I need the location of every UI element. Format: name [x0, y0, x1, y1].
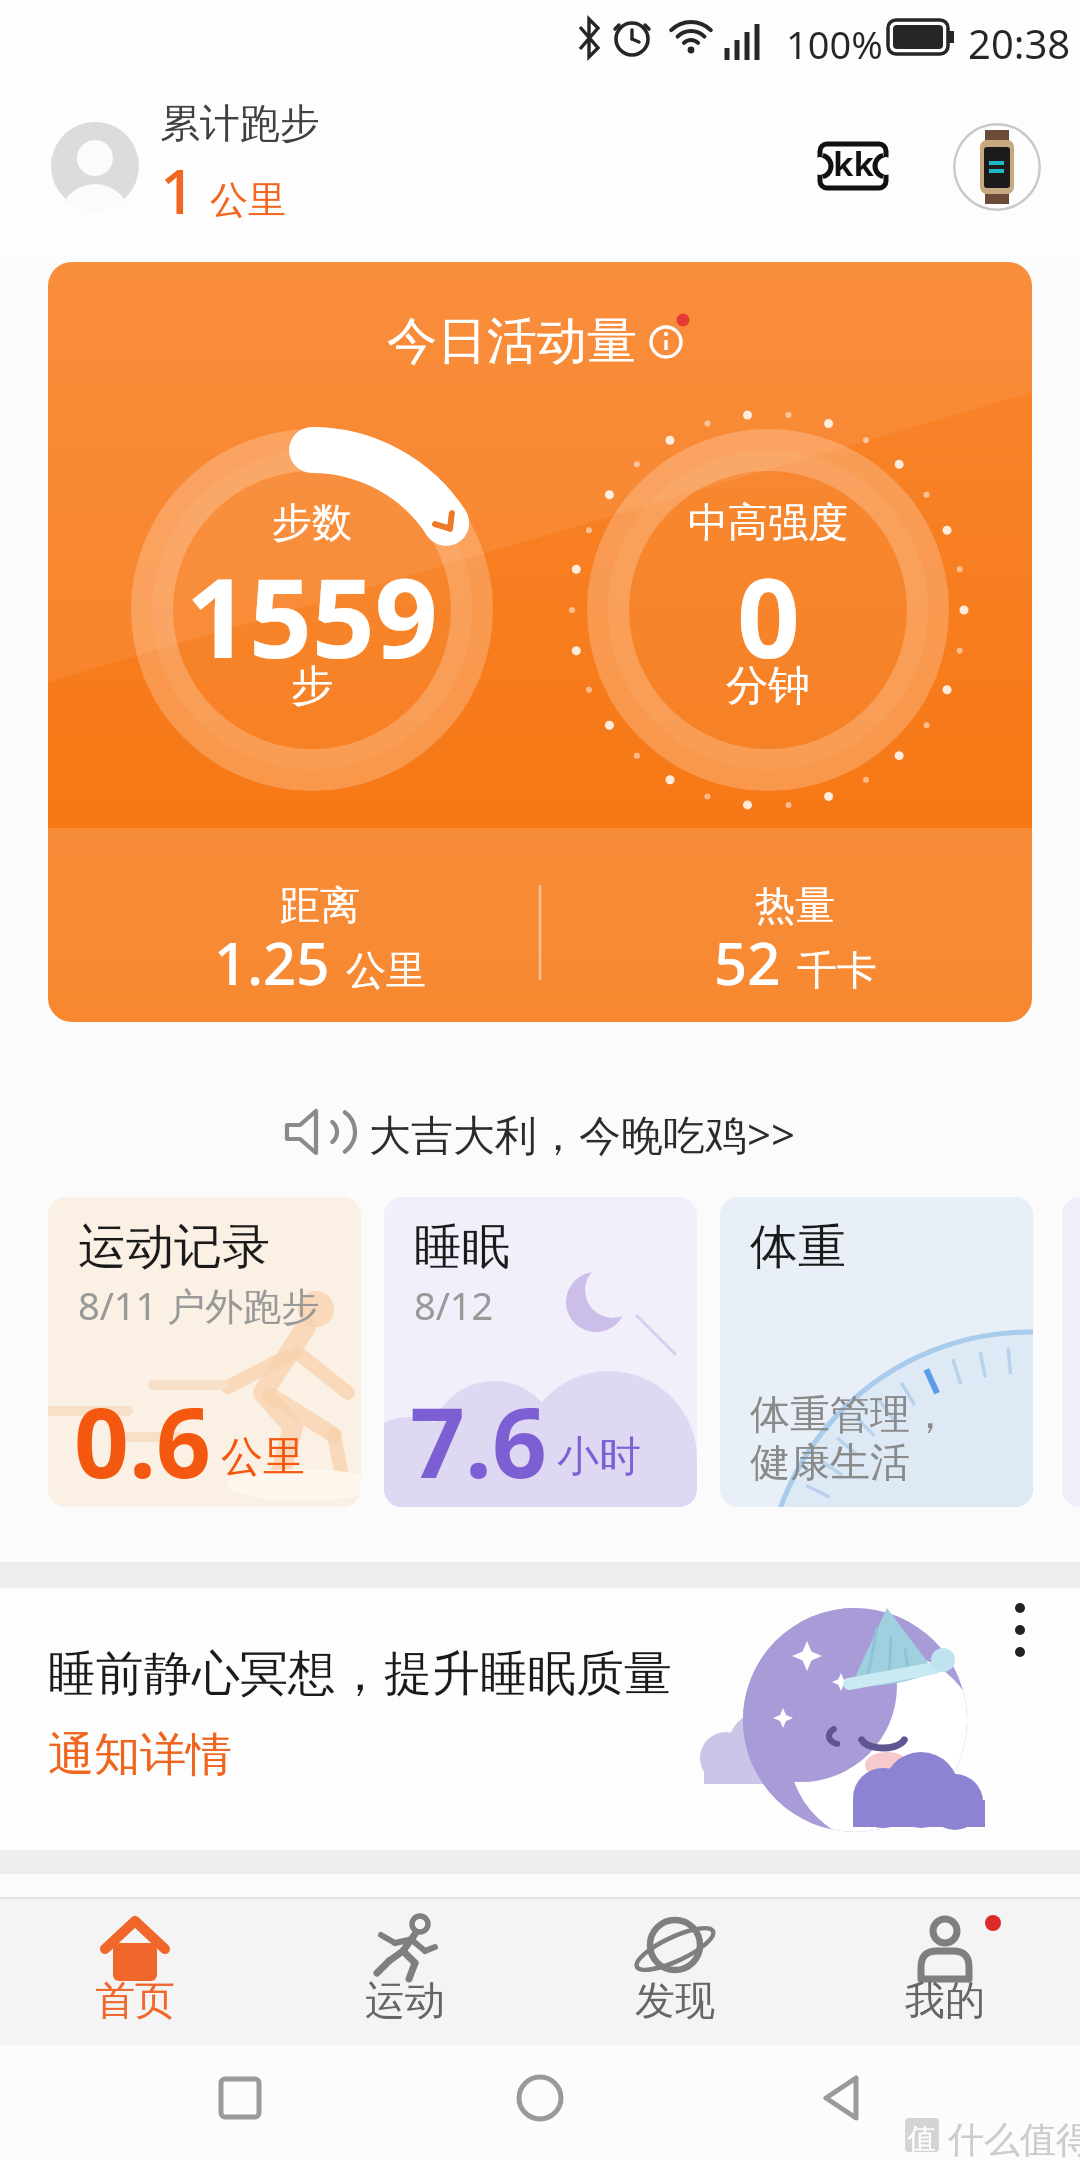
button[interactable]: [953, 123, 1041, 211]
staticText: 体重管理，: [750, 1389, 950, 1439]
staticText: 0.6: [74, 1375, 211, 1506]
button[interactable]: 发现: [540, 1897, 810, 2045]
staticText: 首页: [95, 1975, 175, 2025]
staticText: 体重: [750, 1217, 846, 1277]
staticText: 值: [908, 2121, 936, 2156]
staticText: 公里: [346, 945, 426, 995]
staticText: 睡前静心冥想，提升睡眠质量: [48, 1644, 672, 1704]
button[interactable]: 睡前静心冥想，提升睡眠质量: [0, 1588, 1080, 1850]
button[interactable]: 大吉大利，今晚吃鸡>>: [0, 1098, 1080, 1168]
button[interactable]: 体重: [720, 1197, 1033, 1507]
staticText: 健康生活: [750, 1437, 910, 1487]
button[interactable]: 今日活动量: [48, 262, 1032, 1022]
staticText: 通知详情: [48, 1726, 232, 1784]
staticText: kk: [833, 141, 874, 186]
staticText: 1: [160, 148, 196, 232]
staticText: 7.6: [410, 1375, 547, 1506]
staticText: 公里: [221, 1431, 305, 1484]
staticText: 大吉大利，今晚吃鸡>>: [369, 1105, 796, 1162]
staticText: 运动: [365, 1975, 445, 2025]
button[interactable]: 首页: [0, 1897, 270, 2045]
staticText: 100%: [786, 18, 883, 70]
staticText: 1559: [186, 540, 438, 690]
staticText: 公里: [210, 176, 286, 224]
staticText: 52: [714, 923, 781, 1002]
staticText: 睡眠: [414, 1217, 510, 1277]
staticText: 8/11 户外跑步: [78, 1279, 320, 1331]
staticText: 20:38: [968, 16, 1071, 70]
button[interactable]: 睡眠: [384, 1197, 697, 1507]
staticText: 发现: [635, 1975, 715, 2025]
button[interactable]: [51, 122, 139, 210]
staticText: 8/12: [414, 1279, 494, 1331]
staticText: 0: [737, 540, 800, 690]
button[interactable]: 我的: [810, 1897, 1080, 2045]
staticText: 今日活动量: [387, 310, 637, 373]
button[interactable]: kk: [818, 142, 888, 190]
staticText: 步: [291, 660, 333, 713]
staticText: 中高强度: [688, 497, 848, 547]
staticText: 累计跑步: [160, 98, 320, 148]
staticText: 1.25: [214, 923, 330, 1002]
button[interactable]: 累计跑步: [160, 98, 320, 232]
staticText: 分钟: [726, 660, 810, 713]
staticText: 步数: [272, 497, 352, 547]
staticText: 千卡: [797, 945, 877, 995]
staticText: 我的: [905, 1975, 985, 2025]
staticText: 运动记录: [78, 1217, 270, 1277]
button[interactable]: 运动记录: [48, 1197, 361, 1507]
button[interactable]: 运动: [270, 1897, 540, 2045]
staticText: 距离: [280, 880, 360, 930]
staticText: 什么值得买: [948, 2117, 1080, 2160]
staticText: 热量: [755, 880, 835, 930]
staticText: 小时: [557, 1431, 641, 1484]
